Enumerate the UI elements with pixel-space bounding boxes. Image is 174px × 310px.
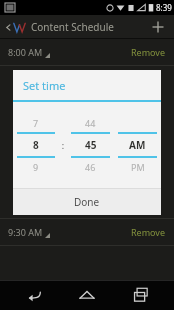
button[interactable]: 44 bbox=[67, 114, 114, 176]
staticText: 8 bbox=[33, 138, 39, 152]
staticText: Set time bbox=[23, 78, 66, 93]
button[interactable]: Navigate up bbox=[3, 16, 13, 38]
staticText: 8:00 AM bbox=[8, 46, 43, 58]
staticText: 9:30 AM bbox=[8, 226, 43, 238]
staticText: Done bbox=[74, 195, 100, 209]
button[interactable]: 8:00 AM bbox=[0, 39, 174, 65]
button[interactable]: AM bbox=[114, 114, 161, 176]
staticText: Content Schedule bbox=[31, 20, 114, 34]
staticText: Remove bbox=[131, 46, 166, 58]
staticText: 9 bbox=[33, 161, 39, 173]
button[interactable]: Recent apps bbox=[121, 280, 161, 310]
staticText: PM bbox=[131, 161, 145, 173]
button[interactable]: Home bbox=[67, 280, 107, 310]
staticText: AM bbox=[129, 138, 146, 152]
staticText: 46 bbox=[85, 161, 96, 173]
button[interactable]: 9:30 AM bbox=[0, 219, 174, 245]
staticText: 45 bbox=[85, 138, 97, 152]
button[interactable]: Back bbox=[14, 280, 54, 310]
button[interactable]: 7 bbox=[13, 114, 59, 176]
button[interactable]: Add bbox=[148, 17, 168, 37]
staticText: 8:39 bbox=[156, 2, 172, 13]
staticText: : bbox=[59, 139, 67, 151]
staticText: 44 bbox=[85, 117, 96, 129]
staticText: Remove bbox=[131, 226, 166, 238]
staticText: 7 bbox=[33, 117, 39, 129]
button[interactable]: Done bbox=[13, 189, 161, 215]
